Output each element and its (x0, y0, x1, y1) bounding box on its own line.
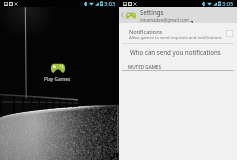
button[interactable]: Who can send you notifications (119, 44, 237, 59)
other: Navigate up (121, 12, 124, 18)
button[interactable]: Navigate up (119, 7, 237, 23)
staticText: ionamadeo@gmail.com (140, 17, 189, 23)
button[interactable]: Play Games (44, 63, 71, 83)
staticText: 3:03 (104, 0, 116, 7)
staticText: Who can send you notifications (130, 48, 221, 56)
staticText: Notifications (129, 28, 163, 36)
staticText: MUTED GAMES (128, 64, 161, 70)
staticText: Allow games to send requests and notific… (129, 35, 222, 41)
other: Notifications toggle (226, 30, 233, 37)
staticText: Settings (140, 8, 164, 16)
button[interactable]: Notifications (119, 23, 237, 43)
staticText: 3:05 (222, 0, 234, 7)
staticText: Play Games (44, 76, 71, 83)
